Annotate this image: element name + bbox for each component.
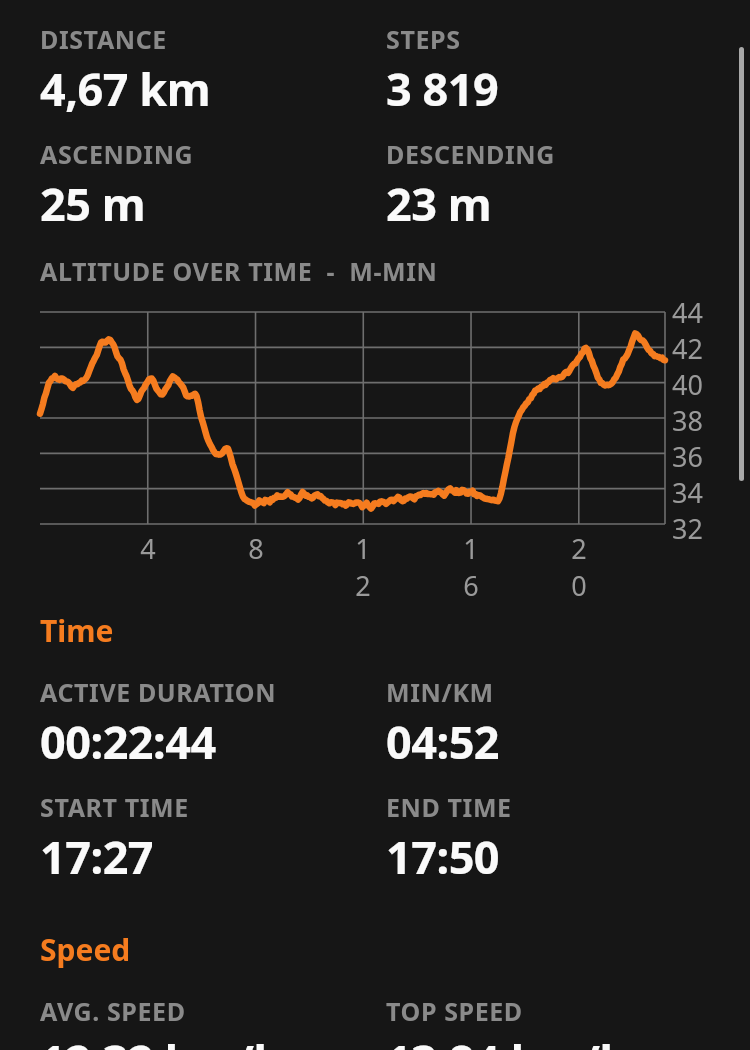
staticText: TOP SPEED [386, 994, 523, 1028]
staticText: 40 [672, 366, 703, 403]
staticText: 04:52 [386, 711, 500, 772]
staticText: 44 [672, 294, 703, 331]
staticText: 00:22:44 [40, 711, 216, 772]
button[interactable]: Time [40, 610, 114, 651]
staticText: 13,84 km/h [386, 1030, 629, 1050]
staticText: 42 [672, 330, 703, 367]
staticText: 8 [242, 530, 270, 567]
staticText: 4,67 km [40, 58, 211, 119]
button[interactable]: ASCENDING [40, 137, 194, 234]
staticText: Speed [40, 929, 131, 970]
staticText: ASCENDING [40, 137, 194, 171]
staticText: Time [40, 610, 114, 651]
staticText: DESCENDING [386, 137, 555, 171]
staticText: 34 [672, 474, 703, 511]
staticText: 23 m [386, 173, 492, 234]
button[interactable]: Speed [40, 929, 131, 970]
staticText: 12 [349, 530, 377, 604]
staticText: ACTIVE DURATION [40, 675, 277, 709]
staticText: 3 819 [386, 58, 499, 119]
staticText: 17:50 [386, 826, 500, 887]
staticText: 32 [672, 510, 703, 547]
staticText: 38 [672, 402, 703, 439]
button[interactable]: AVG. SPEED [40, 994, 283, 1050]
button[interactable]: DESCENDING [386, 137, 555, 234]
staticText: 17:27 [40, 826, 154, 887]
staticText: MIN/KM [386, 675, 494, 709]
staticText: ALTITUDE OVER TIME - M-MIN [40, 254, 438, 288]
button[interactable]: ACTIVE DURATION [40, 675, 277, 772]
button[interactable]: STEPS [386, 22, 499, 119]
staticText: STEPS [386, 22, 461, 56]
button[interactable]: Altitude over time chart [0, 302, 750, 564]
button[interactable]: DISTANCE [40, 22, 211, 119]
staticText: DISTANCE [40, 22, 167, 56]
button[interactable]: MIN/KM [386, 675, 500, 772]
staticText: 25 m [40, 173, 146, 234]
staticText: 20 [565, 530, 593, 604]
staticText: 36 [672, 438, 703, 475]
staticText: 4 [134, 530, 162, 567]
button[interactable]: END TIME [386, 790, 512, 887]
staticText: END TIME [386, 790, 512, 824]
staticText: 16 [457, 530, 485, 604]
button[interactable]: START TIME [40, 790, 189, 887]
button[interactable]: TOP SPEED [386, 994, 629, 1050]
staticText: 12,32 km/h [40, 1030, 283, 1050]
staticText: AVG. SPEED [40, 994, 186, 1028]
staticText: START TIME [40, 790, 189, 824]
